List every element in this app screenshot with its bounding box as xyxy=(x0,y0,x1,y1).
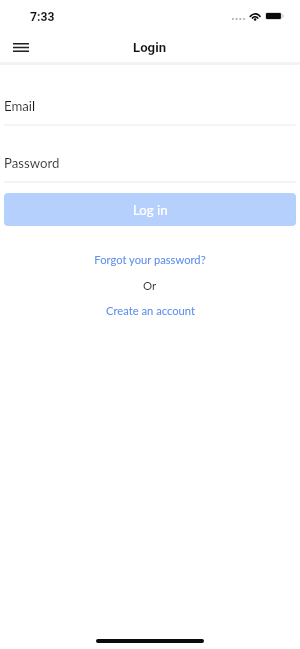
button[interactable]: Email xyxy=(4,95,296,126)
button[interactable]: Forgot your password? xyxy=(0,253,300,266)
staticText: 7:33 xyxy=(30,10,55,24)
staticText: Email xyxy=(4,98,36,114)
staticText: Create an account xyxy=(106,304,195,317)
staticText: Password xyxy=(4,155,60,171)
staticText: Login xyxy=(133,40,167,55)
staticText: Log in xyxy=(133,202,168,218)
staticText: Or xyxy=(143,279,157,293)
button[interactable]: Open navigation menu xyxy=(4,33,37,62)
staticText: Forgot your password? xyxy=(94,253,206,266)
button[interactable]: Create an account xyxy=(0,304,300,317)
button[interactable]: Password xyxy=(4,152,296,183)
button[interactable]: Log in xyxy=(4,193,296,226)
